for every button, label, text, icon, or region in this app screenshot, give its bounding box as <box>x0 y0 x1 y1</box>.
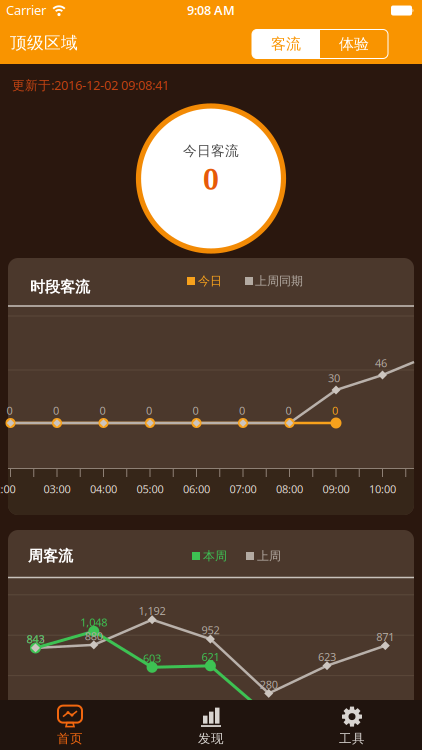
staticText: 客流 <box>271 35 301 53</box>
staticText: 首页 <box>57 731 83 746</box>
staticText: 0 <box>99 403 105 418</box>
staticText: 09:00 <box>322 481 349 496</box>
staticText: 871 <box>376 629 394 644</box>
button[interactable]: 首页 <box>20 702 120 750</box>
staticText: 0 <box>53 403 59 418</box>
staticText: 顶级区域 <box>10 32 78 53</box>
staticText: 上周 <box>257 548 281 563</box>
staticText: 0 <box>6 403 12 418</box>
button[interactable]: 发现 <box>161 702 261 750</box>
staticText: 上周同期 <box>255 273 303 288</box>
staticText: 发现 <box>198 731 224 746</box>
staticText: 05:00 <box>136 481 163 496</box>
staticText: 今日 <box>198 273 222 288</box>
staticText: 今日客流 <box>183 142 239 160</box>
staticText: 06:00 <box>183 481 210 496</box>
button[interactable]: 客流 <box>0 0 422 750</box>
staticText: 46 <box>375 355 387 370</box>
staticText: 621 <box>201 649 219 664</box>
staticText: 07:00 <box>229 481 256 496</box>
staticText: 0 <box>332 403 338 418</box>
staticText: 04:00 <box>90 481 117 496</box>
staticText: Carrier <box>6 1 46 19</box>
staticText: 03:00 <box>43 481 70 496</box>
button[interactable]: 工具 <box>302 702 402 750</box>
staticText: 880 <box>85 628 103 643</box>
staticText: 9:08 AM <box>187 1 235 19</box>
staticText: 0 <box>146 403 152 418</box>
staticText: 952 <box>201 623 219 638</box>
staticText: 更新于:2016-12-02 09:08:41 <box>12 76 169 94</box>
staticText: 体验 <box>339 35 369 53</box>
staticText: 周客流 <box>28 547 73 565</box>
staticText: 0 <box>203 160 219 198</box>
staticText: 30 <box>328 370 340 385</box>
staticText: 1,192 <box>139 603 166 618</box>
staticText: 0 <box>239 403 245 418</box>
staticText: 02:00 <box>0 481 15 496</box>
staticText: 工具 <box>339 731 365 746</box>
staticText: 10:00 <box>369 481 396 496</box>
staticText: 0 <box>192 403 198 418</box>
staticText: 603 <box>143 651 161 666</box>
staticText: 时段客流 <box>30 278 90 296</box>
staticText: 843 <box>26 631 44 646</box>
button[interactable]: 体验 <box>320 29 388 58</box>
staticText: 08:00 <box>276 481 303 496</box>
staticText: 623 <box>318 649 336 664</box>
staticText: 本周 <box>203 548 227 563</box>
staticText: 1,048 <box>80 615 107 630</box>
staticText: 842 <box>26 631 44 646</box>
staticText: 0 <box>285 403 291 418</box>
staticText: 280 <box>260 677 278 692</box>
